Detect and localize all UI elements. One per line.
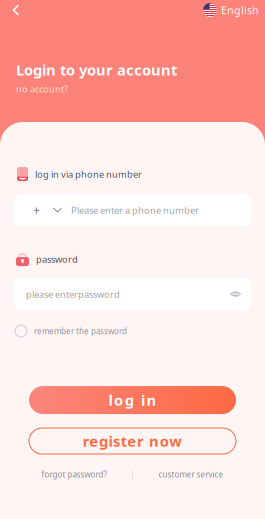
button[interactable]: log in <box>0 386 265 414</box>
button[interactable]: register now <box>0 428 265 454</box>
button[interactable]: forgot password? <box>41 469 106 480</box>
staticText: remember the password <box>34 326 127 336</box>
staticText: English <box>221 3 259 17</box>
staticText: please enterpassword <box>26 288 120 300</box>
staticText: log in <box>108 390 156 410</box>
button[interactable]: English <box>203 1 265 19</box>
staticText: no account? <box>16 83 68 95</box>
button[interactable]: + <box>0 194 265 226</box>
button[interactable]: customer service <box>158 469 223 480</box>
staticText: forgot password? <box>41 469 106 480</box>
staticText: | <box>130 469 134 480</box>
button[interactable]: Back <box>0 2 32 18</box>
staticText: customer service <box>158 469 223 480</box>
staticText: register now <box>83 431 182 451</box>
staticText: password <box>36 253 78 265</box>
staticText: Please enter a phone number <box>71 204 199 216</box>
staticText: log in via phone number <box>35 168 142 180</box>
staticText: Login to your account <box>16 60 177 80</box>
staticText: + <box>33 202 40 218</box>
button[interactable]: remember the password <box>0 323 265 339</box>
button[interactable]: please enterpassword <box>0 278 265 310</box>
